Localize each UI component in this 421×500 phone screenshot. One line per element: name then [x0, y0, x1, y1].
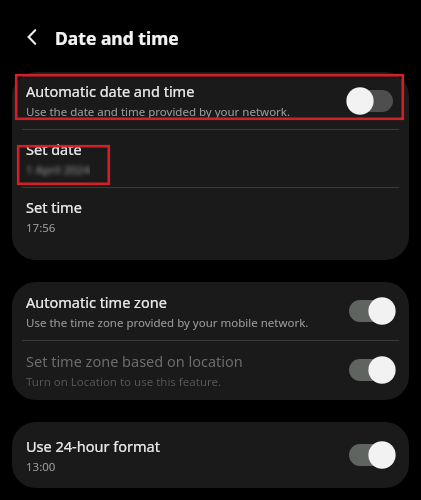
staticText: Turn on Location to use this feature. — [26, 374, 222, 390]
staticText: Automatic time zone — [26, 292, 167, 312]
button[interactable]: Back — [14, 19, 50, 55]
staticText: 1 April 2024 — [26, 162, 90, 178]
button[interactable]: Set date — [12, 130, 409, 187]
staticText: Set time zone based on location — [26, 351, 243, 371]
button[interactable]: Automatic date and time — [12, 72, 409, 129]
button[interactable]: Set time zone based on location — [12, 341, 409, 399]
staticText: Set date — [26, 139, 82, 159]
staticText: Use the time zone provided by your mobil… — [26, 315, 309, 331]
staticText: 17:56 — [26, 220, 56, 236]
staticText: Automatic date and time — [26, 81, 195, 101]
staticText: 13:00 — [26, 459, 56, 475]
staticText: Set time — [26, 197, 82, 217]
button[interactable]: Automatic time zone — [12, 282, 409, 340]
staticText: Date and time — [55, 26, 179, 50]
button[interactable]: Toggle on — [347, 355, 395, 385]
staticText: Use 24-hour format — [26, 436, 160, 456]
button[interactable]: Toggle on — [347, 296, 395, 326]
button[interactable]: Toggle on — [347, 440, 395, 470]
button[interactable]: Use 24-hour format — [12, 422, 409, 488]
button[interactable]: Toggle off — [347, 86, 395, 116]
button[interactable]: Set time — [12, 188, 409, 245]
staticText: Use the date and time provided by your n… — [26, 104, 291, 120]
